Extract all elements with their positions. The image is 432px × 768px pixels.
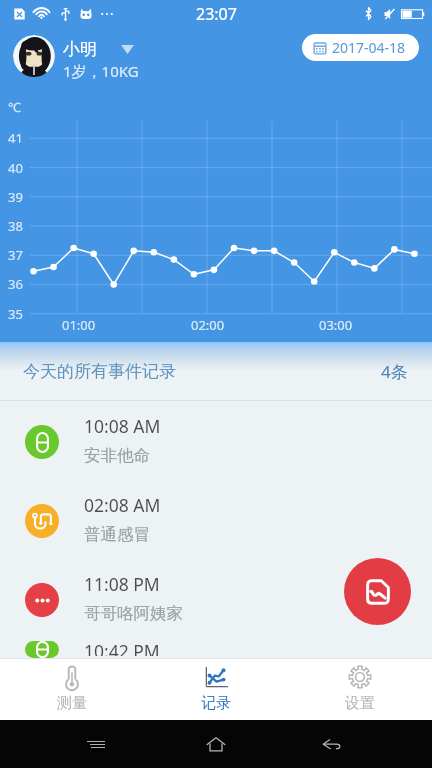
staticText: 今天的所有事件记录	[23, 361, 176, 382]
staticText: 40	[8, 159, 23, 177]
button[interactable]: Select child	[121, 45, 134, 54]
button[interactable]: 测量	[0, 659, 144, 720]
button[interactable]: New record	[344, 558, 411, 625]
staticText: 23:07	[196, 3, 237, 25]
staticText: 37	[8, 246, 23, 264]
staticText: 03:00	[319, 316, 353, 334]
staticText: 哥哥咯阿姨家	[84, 603, 183, 624]
staticText: 安非他命	[84, 445, 150, 466]
button[interactable]: Back	[316, 730, 348, 758]
staticText: 11:08 PM	[84, 572, 160, 596]
button[interactable]: 记录	[144, 659, 288, 720]
staticText: 4条	[381, 360, 408, 383]
button[interactable]: Home	[200, 730, 232, 758]
staticText: 41	[8, 129, 23, 147]
button[interactable]: Recent apps	[80, 730, 112, 758]
staticText: 10:42 PM	[84, 639, 160, 656]
staticText: 2017-04-18	[332, 38, 406, 57]
button[interactable]: 2017-04-18	[302, 34, 419, 61]
staticText: 38	[8, 217, 23, 235]
staticText: 39	[8, 188, 23, 206]
button[interactable]: Avatar	[13, 35, 55, 77]
button[interactable]: 10:08 AM	[0, 401, 432, 480]
staticText: 02:00	[191, 316, 225, 334]
staticText: 10:08 AM	[84, 414, 161, 438]
staticText: 小明	[63, 39, 97, 60]
staticText: 普通感冒	[84, 524, 150, 545]
staticText: 1岁，10KG	[63, 61, 139, 81]
staticText: 测量	[57, 694, 87, 713]
button[interactable]: 10:42 PM	[0, 638, 432, 658]
button[interactable]: 11:08 PM	[0, 559, 432, 638]
staticText: 设置	[345, 694, 375, 713]
staticText: 记录	[201, 694, 231, 713]
staticText: 35	[8, 305, 23, 323]
staticText: ℃	[8, 98, 21, 116]
button[interactable]: 02:08 AM	[0, 480, 432, 559]
staticText: 36	[8, 275, 23, 293]
button[interactable]: 设置	[288, 659, 432, 720]
staticText: 01:00	[62, 316, 96, 334]
staticText: 02:08 AM	[84, 493, 161, 517]
